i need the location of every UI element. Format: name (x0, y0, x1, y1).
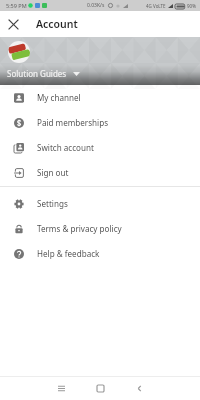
staticText: Help & feedback (37, 248, 100, 259)
button[interactable]: My channel (0, 85, 200, 110)
staticText: Account (36, 17, 78, 31)
staticText: Switch account (37, 142, 94, 153)
staticText: My channel (37, 92, 81, 103)
button[interactable]: Paid memberships (0, 110, 200, 135)
button[interactable]: Terms & privacy policy (0, 216, 200, 241)
button[interactable]: Settings (0, 191, 200, 216)
button[interactable]: Back (129, 378, 149, 398)
staticText: Sign out (37, 167, 69, 178)
staticText: Terms & privacy policy (37, 223, 122, 234)
button[interactable]: Recent apps (51, 378, 71, 398)
button[interactable]: Home (90, 378, 110, 398)
staticText: Settings (37, 198, 68, 209)
staticText: Solution Guides (7, 68, 67, 79)
button[interactable]: Sign out (0, 160, 200, 185)
staticText: 4G VoLTE (146, 3, 166, 9)
staticText: 5:59 PM (6, 2, 27, 9)
staticText: Paid memberships (37, 117, 109, 128)
button[interactable]: Solution Guides (0, 64, 86, 85)
button[interactable]: Help & feedback (0, 241, 200, 266)
button[interactable]: Close (4, 15, 22, 33)
staticText: 90% (187, 3, 196, 9)
staticText: 0.03K/s (87, 2, 105, 9)
button[interactable]: Switch account (0, 135, 200, 160)
